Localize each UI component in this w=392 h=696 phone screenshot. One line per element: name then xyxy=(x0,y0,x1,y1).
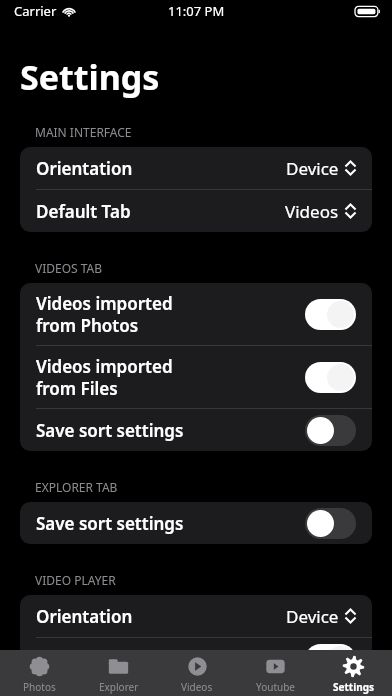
button[interactable]: Enabled xyxy=(305,362,356,393)
button[interactable]: Orientation xyxy=(20,595,372,637)
staticText: Orientation xyxy=(36,157,133,180)
staticText: MAIN INTERFACE xyxy=(35,124,132,140)
staticText: Carrier xyxy=(14,2,57,20)
button[interactable]: Videos imported from Files xyxy=(20,346,372,408)
staticText: Save sort settings xyxy=(36,512,184,535)
button[interactable]: Enabled xyxy=(305,644,356,675)
staticText: Videos xyxy=(285,200,339,223)
button[interactable]: Photos xyxy=(0,650,79,696)
button[interactable]: Disabled xyxy=(305,415,356,446)
staticText: Explorer xyxy=(99,680,139,694)
staticText: Settings xyxy=(20,54,160,100)
staticText: Photos xyxy=(23,680,56,694)
staticText: Videos imported from Photos xyxy=(36,292,173,337)
button[interactable]: Disabled xyxy=(305,508,356,539)
button[interactable]: Settings xyxy=(314,650,392,696)
staticText: Settings xyxy=(333,680,374,694)
staticText: VIDEOS TAB xyxy=(35,260,103,276)
staticText: VIDEO PLAYER xyxy=(35,572,116,588)
staticText: Device xyxy=(286,157,339,180)
staticText: EXPLORER TAB xyxy=(35,479,118,495)
staticText: Videos imported from Files xyxy=(36,355,173,400)
button[interactable]: Default Tab xyxy=(20,190,372,232)
button[interactable]: Enabled xyxy=(305,299,356,330)
button[interactable]: Orientation xyxy=(20,147,372,189)
staticText: Save sort settings xyxy=(36,419,184,442)
button[interactable]: Explorer xyxy=(79,650,158,696)
button[interactable]: Save sort settings xyxy=(20,502,372,544)
staticText: 11:07 PM xyxy=(168,2,225,20)
staticText: Youtube xyxy=(256,680,295,694)
staticText: Videos xyxy=(181,680,213,694)
staticText: Orientation xyxy=(36,605,133,628)
button[interactable]: Youtube xyxy=(236,650,314,696)
button[interactable]: Save sort settings xyxy=(20,409,372,451)
button[interactable]: Videos imported from Photos xyxy=(20,283,372,345)
staticText: Device xyxy=(286,605,339,628)
staticText: Default Tab xyxy=(36,200,131,223)
button[interactable]: Enabled xyxy=(20,638,372,680)
button[interactable]: Videos xyxy=(158,650,236,696)
